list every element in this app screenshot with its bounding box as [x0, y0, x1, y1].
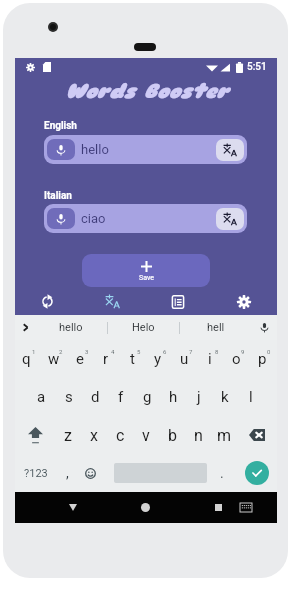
- button[interactable]: hello: [35, 315, 107, 340]
- staticText: a: [37, 388, 46, 406]
- button[interactable]: 1: [13, 340, 40, 378]
- button[interactable]: ?123: [15, 454, 56, 492]
- button[interactable]: h: [160, 378, 186, 416]
- button[interactable]: Back: [60, 492, 86, 523]
- button[interactable]: d: [82, 378, 108, 416]
- button[interactable]: x: [81, 416, 107, 454]
- button[interactable]: .: [207, 454, 237, 492]
- button[interactable]: Save: [82, 254, 210, 287]
- button[interactable]: Backspace: [237, 416, 277, 454]
- staticText: s: [65, 388, 73, 406]
- staticText: p: [258, 350, 267, 368]
- button[interactable]: Swap languages: [15, 288, 80, 315]
- button[interactable]: k: [212, 378, 238, 416]
- button[interactable]: m: [211, 416, 237, 454]
- staticText: h: [169, 388, 178, 406]
- button[interactable]: 7: [171, 340, 197, 378]
- staticText: n: [194, 426, 203, 445]
- staticText: ?123: [24, 467, 48, 480]
- button[interactable]: v: [133, 416, 159, 454]
- button[interactable]: Voice input: [47, 208, 75, 229]
- button[interactable]: l: [238, 378, 264, 416]
- staticText: 2: [59, 348, 63, 355]
- staticText: hell: [207, 321, 225, 334]
- staticText: Words Booster: [15, 79, 277, 104]
- button[interactable]: Emoji: [78, 454, 103, 492]
- button[interactable]: Shift: [15, 416, 55, 454]
- staticText: 5:51: [247, 61, 267, 73]
- staticText: 8: [215, 348, 219, 355]
- button[interactable]: 9: [223, 340, 249, 378]
- button[interactable]: Switch keyboard: [235, 492, 257, 523]
- button[interactable]: 6: [145, 340, 171, 378]
- staticText: ,: [66, 465, 69, 481]
- staticText: v: [142, 426, 150, 445]
- button[interactable]: Translate: [80, 288, 145, 315]
- staticText: x: [90, 426, 98, 445]
- button[interactable]: c: [107, 416, 133, 454]
- staticText: m: [217, 426, 232, 445]
- button[interactable]: 0: [249, 340, 275, 378]
- staticText: r: [103, 350, 109, 368]
- button[interactable]: 4: [93, 340, 119, 378]
- button[interactable]: More suggestions: [15, 315, 35, 340]
- staticText: 0: [267, 348, 271, 355]
- button[interactable]: 8: [197, 340, 223, 378]
- button[interactable]: 5: [119, 340, 145, 378]
- staticText: o: [232, 350, 241, 368]
- button[interactable]: b: [159, 416, 185, 454]
- staticText: d: [91, 388, 100, 406]
- button[interactable]: Voice input: [47, 139, 75, 160]
- staticText: e: [76, 350, 84, 368]
- staticText: w: [48, 350, 60, 368]
- button[interactable]: Translate: [216, 139, 244, 161]
- staticText: 3: [85, 348, 89, 355]
- staticText: hello: [59, 321, 83, 334]
- staticText: y: [154, 350, 162, 368]
- staticText: .: [220, 465, 224, 481]
- staticText: 1: [32, 348, 36, 355]
- button[interactable]: Voice typing: [251, 315, 277, 340]
- button[interactable]: Voice input: [44, 135, 247, 164]
- staticText: 5: [137, 348, 141, 355]
- staticText: 9: [241, 348, 245, 355]
- staticText: j: [197, 388, 201, 406]
- staticText: t: [130, 350, 135, 368]
- button[interactable]: f: [108, 378, 134, 416]
- staticText: l: [249, 388, 253, 406]
- button[interactable]: Recent apps: [205, 492, 231, 523]
- button[interactable]: z: [55, 416, 81, 454]
- staticText: k: [221, 388, 229, 406]
- button[interactable]: Settings: [211, 288, 277, 315]
- staticText: 6: [163, 348, 167, 355]
- button[interactable]: 3: [67, 340, 93, 378]
- staticText: i: [208, 350, 212, 368]
- button[interactable]: s: [55, 378, 82, 416]
- staticText: z: [64, 426, 72, 445]
- staticText: Save: [139, 274, 154, 282]
- button[interactable]: Enter: [237, 454, 277, 492]
- staticText: g: [143, 388, 152, 406]
- staticText: English: [44, 120, 77, 132]
- staticText: 4: [111, 348, 115, 355]
- button[interactable]: n: [185, 416, 211, 454]
- button[interactable]: ,: [56, 454, 78, 492]
- staticText: 7: [189, 348, 193, 355]
- button[interactable]: Helo: [108, 315, 179, 340]
- button[interactable]: Voice input: [44, 204, 247, 233]
- button[interactable]: hell: [180, 315, 251, 340]
- button[interactable]: Translate: [216, 208, 244, 230]
- button[interactable]: g: [134, 378, 160, 416]
- staticText: b: [168, 426, 177, 445]
- staticText: Italian: [44, 190, 72, 202]
- staticText: c: [116, 426, 125, 445]
- staticText: q: [22, 350, 31, 368]
- button[interactable]: j: [186, 378, 212, 416]
- button[interactable]: Word list: [145, 288, 211, 315]
- button[interactable]: 2: [40, 340, 67, 378]
- staticText: Helo: [132, 321, 155, 334]
- button[interactable]: Home: [132, 492, 158, 523]
- staticText: hello: [81, 142, 109, 157]
- button[interactable]: a: [28, 378, 55, 416]
